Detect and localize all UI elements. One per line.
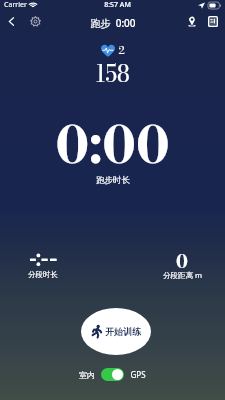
staticText: Carrier	[4, 0, 27, 10]
button[interactable]: History	[204, 13, 221, 30]
staticText: 0	[176, 248, 188, 275]
staticText: 158	[95, 56, 130, 91]
button[interactable]: GPS toggle	[101, 368, 124, 381]
button[interactable]: Back	[3, 13, 20, 30]
staticText: 跑步时长	[96, 175, 130, 186]
staticText: 分段时长	[28, 270, 58, 279]
staticText: 开始训练	[105, 326, 141, 337]
staticText: 分段距离 m	[163, 270, 202, 280]
staticText: 跑步 0:00	[90, 16, 136, 30]
staticText: 室内	[79, 370, 95, 380]
staticText: 0:00	[55, 106, 170, 184]
staticText: GPS	[130, 369, 146, 380]
staticText: 8:57 AM	[104, 0, 131, 10]
button[interactable]: 开始训练	[81, 308, 151, 355]
staticText: 2	[118, 42, 125, 59]
button[interactable]: Settings	[27, 13, 44, 30]
button[interactable]: Map	[183, 13, 200, 30]
